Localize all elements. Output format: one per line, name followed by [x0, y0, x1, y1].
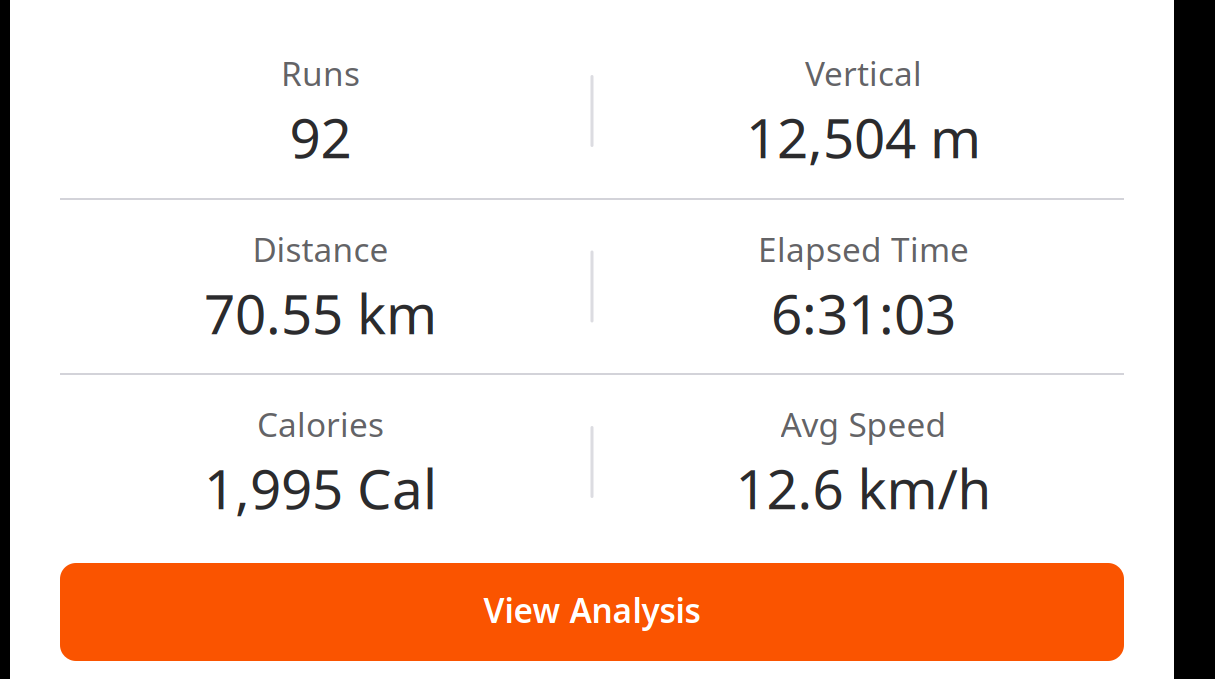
staticText: 12,504 m — [746, 101, 981, 173]
button[interactable]: View Analysis — [60, 563, 1124, 661]
staticText: View Analysis — [483, 588, 700, 632]
staticText: Elapsed Time — [758, 227, 969, 271]
staticText: 1,995 Cal — [204, 452, 437, 524]
staticText: Vertical — [805, 51, 922, 95]
staticText: Avg Speed — [780, 402, 946, 446]
staticText: 70.55 km — [204, 277, 437, 349]
staticText: Distance — [252, 227, 388, 271]
staticText: 12.6 km/h — [735, 452, 991, 524]
staticText: Calories — [257, 402, 384, 446]
staticText: 6:31:03 — [771, 277, 956, 349]
staticText: Runs — [281, 51, 360, 95]
staticText: 92 — [289, 101, 351, 173]
